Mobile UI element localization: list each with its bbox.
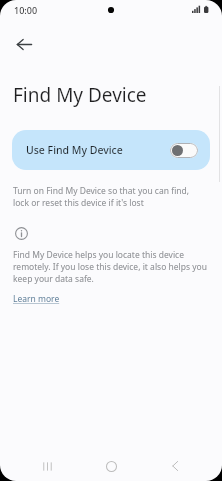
staticText: Find My Device helps you locate this dev… — [13, 249, 208, 285]
button[interactable]: Back — [158, 451, 192, 481]
staticText: Use Find My Device — [26, 143, 123, 157]
staticText: 10:00 — [14, 4, 38, 16]
other: Use Find My Device toggle — [170, 143, 198, 158]
button[interactable]: Home — [94, 451, 128, 481]
button[interactable]: Recent apps — [30, 451, 64, 481]
button[interactable]: Information — [11, 223, 31, 243]
staticText: Find My Device — [13, 82, 147, 108]
staticText: Learn more — [13, 293, 60, 305]
button[interactable]: Use Find My Device — [12, 130, 210, 170]
button[interactable]: Back — [6, 26, 42, 62]
button[interactable]: Learn more — [13, 293, 60, 305]
staticText: Turn on Find My Device so that you can f… — [13, 185, 206, 209]
